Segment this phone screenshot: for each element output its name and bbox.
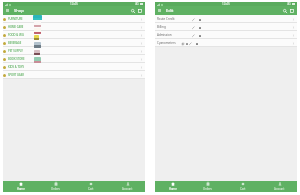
button[interactable]: Cart <box>73 181 109 192</box>
staticText: FOOD & VEG <box>8 33 24 37</box>
staticText: 4G <box>287 2 291 6</box>
button[interactable]: Search <box>282 8 288 14</box>
staticText: 4G <box>135 2 139 6</box>
staticText: Cart <box>88 187 94 191</box>
staticText: Account <box>122 187 133 191</box>
button[interactable]: Account <box>109 181 145 192</box>
staticText: SPORT GEAR <box>8 73 24 77</box>
button[interactable]: BOOK STORE <box>3 55 145 63</box>
staticText: PET SUPPLY <box>8 49 23 53</box>
button[interactable]: Orders <box>190 181 225 192</box>
staticText: HOME CARE <box>8 25 24 29</box>
button[interactable]: Billing <box>155 23 297 31</box>
button[interactable]: Remove <box>198 34 201 37</box>
staticText: BEVERAGE <box>8 41 22 45</box>
button[interactable]: Cart <box>225 181 261 192</box>
button[interactable]: More options <box>289 8 295 14</box>
button[interactable]: Edit <box>192 34 195 37</box>
button[interactable]: PET SUPPLY <box>3 47 145 55</box>
button[interactable]: Remove <box>198 18 201 21</box>
button[interactable]: HOME CARE <box>3 23 145 31</box>
button[interactable]: Delete <box>185 42 188 45</box>
staticText: Billing <box>157 25 166 29</box>
button[interactable]: Edit <box>192 26 195 29</box>
button[interactable]: Duplicate <box>181 42 184 45</box>
staticText: KIDS & TOYS <box>8 65 24 69</box>
button[interactable]: Edit <box>192 18 195 21</box>
staticText: Home <box>17 187 25 191</box>
button[interactable]: Route Credit <box>155 15 297 23</box>
staticText: Orders <box>203 187 212 191</box>
staticText: Route Credit <box>157 17 175 21</box>
staticText: Admission <box>157 33 172 37</box>
button[interactable]: Cyanometers <box>155 39 297 47</box>
button[interactable]: Home <box>155 181 190 192</box>
button[interactable]: More options <box>137 8 143 14</box>
button[interactable]: Menu <box>157 8 162 13</box>
button[interactable]: Remove <box>195 42 198 45</box>
button[interactable]: FURNITURE <box>3 15 145 23</box>
staticText: BOOK STORE <box>8 57 25 61</box>
button[interactable]: Search <box>130 8 136 14</box>
button[interactable]: Account <box>261 181 297 192</box>
button[interactable]: Remove <box>198 26 201 29</box>
button[interactable]: SPORT GEAR <box>3 71 145 79</box>
staticText: Home <box>169 187 177 191</box>
button[interactable]: Orders <box>38 181 73 192</box>
button[interactable]: BEVERAGE <box>3 39 145 47</box>
button[interactable]: Home <box>3 181 38 192</box>
staticText: 12:45 <box>222 2 230 6</box>
staticText: Shop <box>14 8 24 13</box>
button[interactable]: Edit <box>189 42 192 45</box>
staticText: Orders <box>51 187 60 191</box>
staticText: 12:45 <box>70 2 78 6</box>
staticText: Cyanometers <box>157 41 176 45</box>
button[interactable]: KIDS & TOYS <box>3 63 145 71</box>
staticText: Cart <box>240 187 246 191</box>
button[interactable]: Menu <box>5 8 10 13</box>
staticText: Account <box>274 187 285 191</box>
button[interactable]: Admission <box>155 31 297 39</box>
staticText: Edit <box>166 8 174 13</box>
staticText: FURNITURE <box>8 17 23 21</box>
button[interactable]: FOOD & VEG <box>3 31 145 39</box>
